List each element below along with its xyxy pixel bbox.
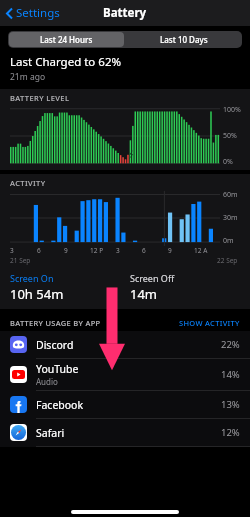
staticText: Last Charged to 62% bbox=[10, 54, 122, 70]
staticText: 100% bbox=[223, 105, 241, 115]
staticText: 3 bbox=[10, 246, 14, 255]
button[interactable]: Safari bbox=[0, 419, 250, 447]
button[interactable]: YouTube bbox=[0, 359, 250, 391]
staticText: 6 bbox=[37, 246, 41, 255]
staticText: Last 10 Days bbox=[160, 34, 208, 45]
staticText: 12 A bbox=[194, 246, 208, 255]
staticText: Facebook bbox=[36, 398, 84, 412]
staticText: 60m bbox=[223, 190, 238, 200]
staticText: 12 P bbox=[90, 246, 104, 255]
staticText: 13% bbox=[221, 398, 240, 411]
staticText: Last 24 Hours bbox=[40, 34, 93, 45]
staticText: 0% bbox=[223, 157, 233, 167]
staticText: 6 bbox=[142, 246, 146, 255]
button[interactable]: Screen Off bbox=[130, 272, 250, 303]
staticText: Screen Off bbox=[130, 272, 175, 284]
staticText: 30m bbox=[223, 213, 238, 223]
staticText: 14% bbox=[221, 368, 240, 381]
staticText: 21m ago bbox=[10, 71, 46, 83]
button[interactable]: Last 24 Hours bbox=[9, 32, 124, 47]
staticText: ACTIVITY bbox=[10, 178, 46, 188]
staticText: 22 Sep bbox=[217, 256, 238, 265]
staticText: Settings bbox=[16, 5, 60, 21]
staticText: 10h 54m bbox=[10, 285, 64, 303]
staticText: 21 Sep bbox=[10, 256, 31, 265]
staticText: 3 bbox=[116, 246, 120, 255]
button[interactable]: Facebook bbox=[0, 391, 250, 419]
staticText: 50% bbox=[223, 131, 237, 141]
staticText: Discord bbox=[36, 338, 74, 352]
staticText: Audio bbox=[36, 376, 58, 387]
staticText: Screen On bbox=[10, 272, 54, 284]
staticText: Battery bbox=[103, 5, 147, 21]
staticText: BATTERY LEVEL bbox=[10, 93, 70, 103]
staticText: 0m bbox=[223, 236, 234, 246]
button[interactable]: SHOW ACTIVITY bbox=[179, 318, 240, 328]
staticText: 14m bbox=[130, 285, 158, 303]
staticText: YouTube bbox=[36, 362, 79, 376]
staticText: BATTERY USAGE BY APP bbox=[10, 318, 101, 328]
staticText: 12% bbox=[221, 426, 240, 439]
staticText: 22% bbox=[221, 338, 240, 351]
button[interactable]: Settings bbox=[3, 3, 62, 23]
button[interactable]: Screen On bbox=[10, 272, 130, 303]
staticText: 9 bbox=[168, 246, 172, 255]
button[interactable]: Discord bbox=[0, 331, 250, 359]
staticText: 9 bbox=[64, 246, 68, 255]
staticText: Safari bbox=[36, 426, 65, 440]
staticText: SHOW ACTIVITY bbox=[179, 318, 240, 328]
button[interactable]: Last 10 Days bbox=[125, 31, 242, 48]
